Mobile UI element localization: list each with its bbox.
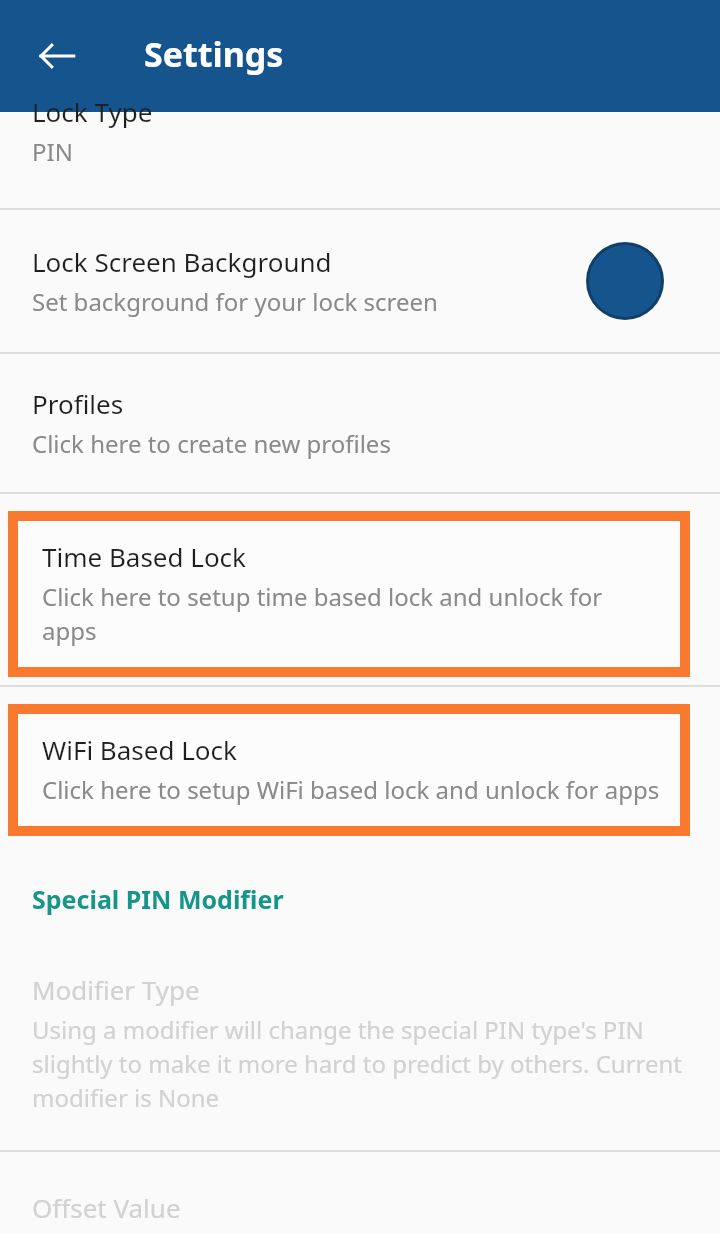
button[interactable]: Offset Value bbox=[0, 1152, 720, 1222]
staticText: Modifier Type bbox=[32, 972, 200, 1007]
staticText: Profiles bbox=[32, 386, 124, 421]
button[interactable]: Time Based Lock bbox=[18, 521, 680, 667]
button[interactable]: WiFi Based Lock bbox=[18, 714, 680, 826]
staticText: Time Based Lock bbox=[42, 539, 246, 574]
button[interactable]: Pick background colour bbox=[589, 245, 661, 317]
staticText: Special PIN Modifier bbox=[32, 882, 284, 916]
staticText: Lock Type bbox=[32, 94, 153, 129]
button[interactable]: Lock Type bbox=[0, 112, 720, 208]
staticText: Click here to create new profiles bbox=[32, 427, 391, 460]
staticText: Set background for your lock screen bbox=[32, 285, 438, 318]
button[interactable]: Lock Screen Background bbox=[0, 210, 720, 352]
staticText: Lock Screen Background bbox=[32, 244, 332, 279]
staticText: Offset Value bbox=[32, 1190, 181, 1225]
button[interactable]: Modifier Type bbox=[0, 926, 720, 1150]
staticText: Click here to setup time based lock and … bbox=[42, 580, 662, 647]
button[interactable]: Profiles bbox=[0, 354, 720, 492]
staticText: Settings bbox=[144, 31, 284, 77]
button[interactable]: Back bbox=[30, 29, 84, 83]
staticText: PIN bbox=[32, 135, 73, 168]
staticText: Click here to setup WiFi based lock and … bbox=[42, 773, 660, 806]
staticText: Using a modifier will change the special… bbox=[32, 1013, 696, 1114]
staticText: WiFi Based Lock bbox=[42, 732, 237, 767]
